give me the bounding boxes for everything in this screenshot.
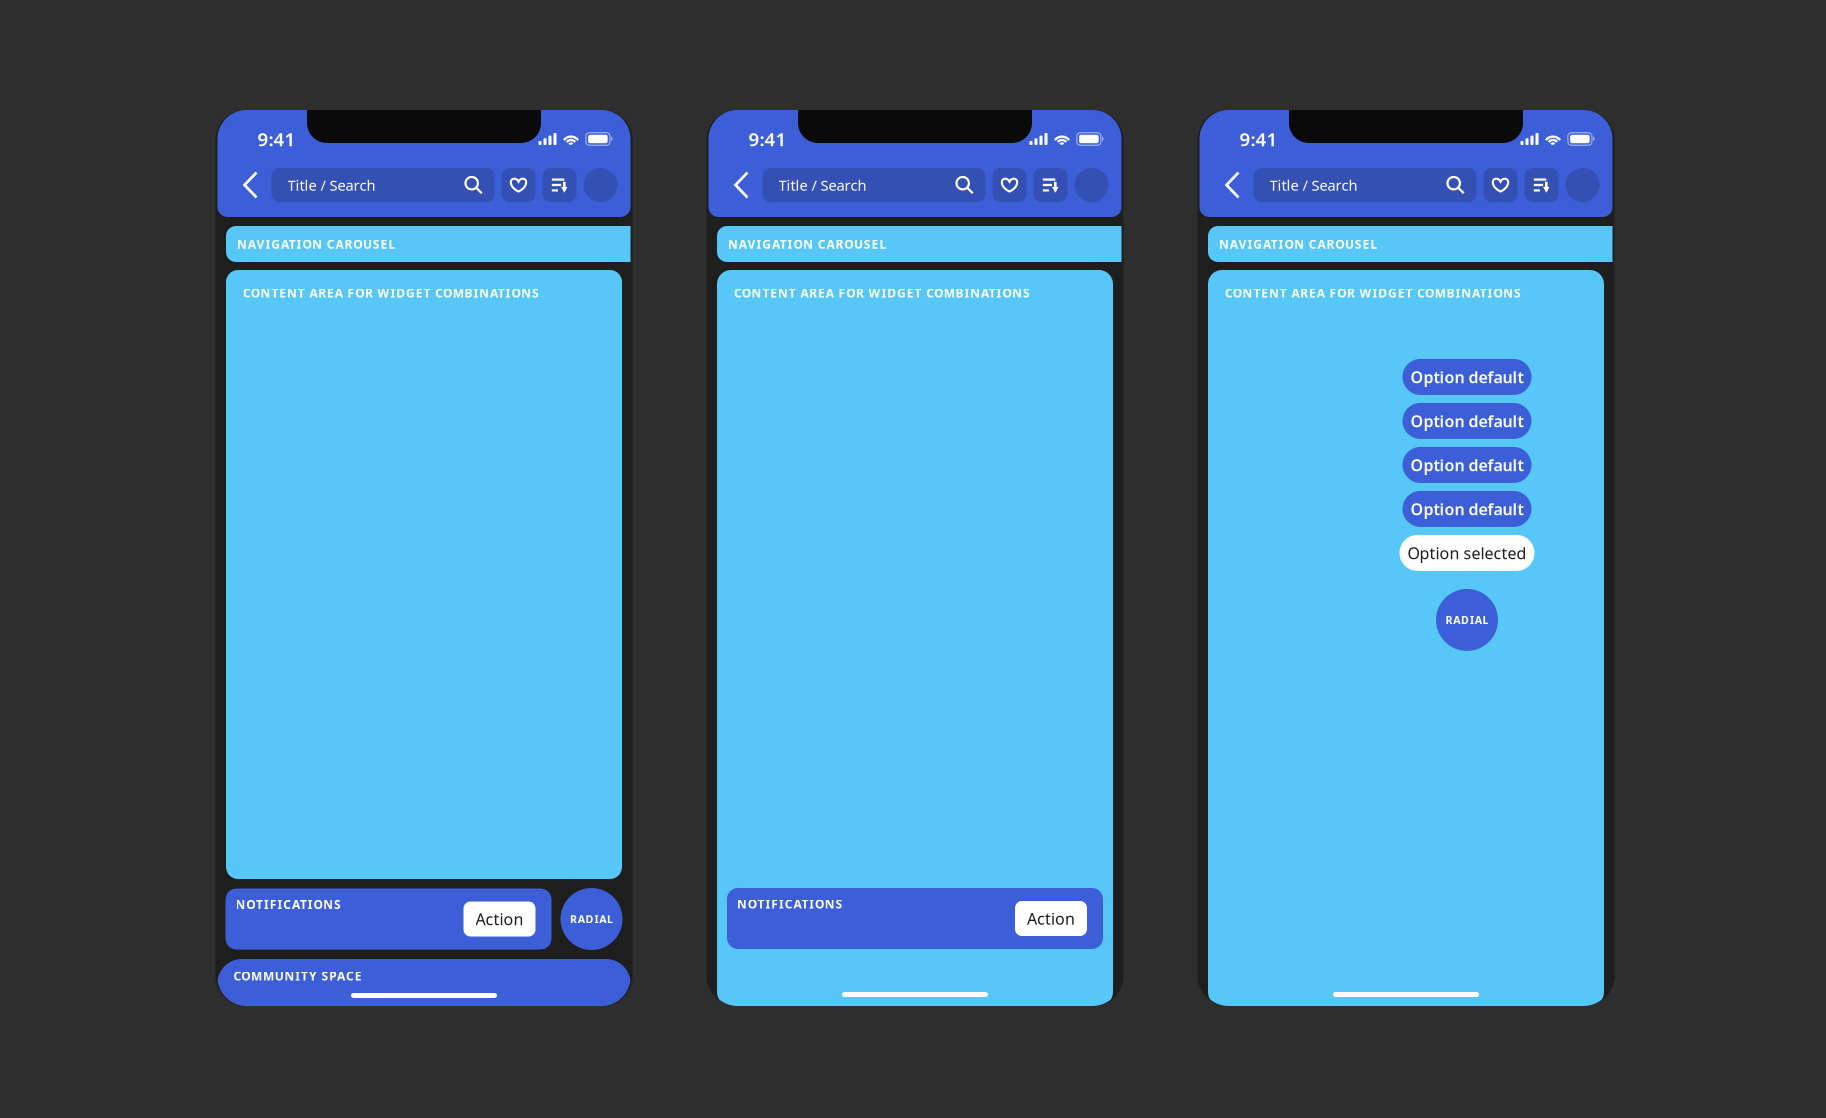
button[interactable]: Sort — [1524, 168, 1558, 202]
staticText: Option selected — [1407, 542, 1526, 563]
button[interactable]: Favourites — [501, 168, 535, 202]
button[interactable]: Title / Search — [1253, 168, 1476, 202]
staticText: Action — [1027, 908, 1075, 929]
button[interactable]: Action — [1015, 901, 1087, 936]
staticText: Option default — [1410, 410, 1523, 431]
button[interactable]: Title / Search — [271, 168, 494, 202]
staticText: 9:41 — [257, 127, 295, 151]
staticText: RADIAL — [1445, 613, 1488, 627]
button[interactable]: Option default — [1402, 447, 1531, 483]
staticText: CONTENT AREA FOR WIDGET COMBINATIONS — [243, 285, 539, 301]
staticText: Option default — [1410, 498, 1523, 519]
button[interactable]: RADIAL — [1436, 589, 1498, 651]
staticText: NAVIGATION CAROUSEL — [237, 236, 395, 252]
button[interactable]: Option default — [1402, 359, 1531, 395]
button[interactable]: Action — [463, 901, 535, 936]
button[interactable]: Title / Search — [762, 168, 985, 202]
staticText: Option default — [1410, 454, 1523, 475]
button[interactable]: Sort — [542, 168, 576, 202]
staticText: Action — [475, 908, 523, 930]
button[interactable]: Profile — [1565, 168, 1599, 202]
button[interactable]: Favourites — [1483, 168, 1517, 202]
button[interactable]: Sort — [1033, 168, 1067, 202]
staticText: RADIAL — [570, 912, 613, 926]
button[interactable]: Profile — [583, 168, 617, 202]
button[interactable]: Favourites — [992, 168, 1026, 202]
staticText: CONTENT AREA FOR WIDGET COMBINATIONS — [734, 285, 1030, 301]
button[interactable]: Profile — [1074, 168, 1108, 202]
staticText: NAVIGATION CAROUSEL — [1219, 236, 1377, 252]
staticText: NAVIGATION CAROUSEL — [728, 236, 886, 252]
staticText: COMMUNITY SPACE — [233, 968, 362, 984]
staticText: Option default — [1410, 366, 1523, 387]
staticText: 9:41 — [1239, 127, 1277, 151]
button[interactable]: Option selected — [1399, 535, 1534, 571]
button[interactable]: Back — [1218, 167, 1246, 203]
button[interactable]: Back — [727, 167, 755, 203]
staticText: NOTIFICATIONS — [737, 896, 843, 912]
staticText: NOTIFICATIONS — [235, 896, 341, 912]
staticText: CONTENT AREA FOR WIDGET COMBINATIONS — [1225, 285, 1521, 301]
staticText: Title / Search — [287, 175, 375, 195]
button[interactable]: Option default — [1402, 491, 1531, 527]
staticText: Title / Search — [1269, 175, 1357, 195]
button[interactable]: Back — [236, 167, 264, 203]
staticText: Title / Search — [778, 175, 866, 195]
staticText: 9:41 — [748, 127, 786, 151]
button[interactable]: Option default — [1402, 403, 1531, 439]
button[interactable]: RADIAL — [560, 888, 622, 950]
